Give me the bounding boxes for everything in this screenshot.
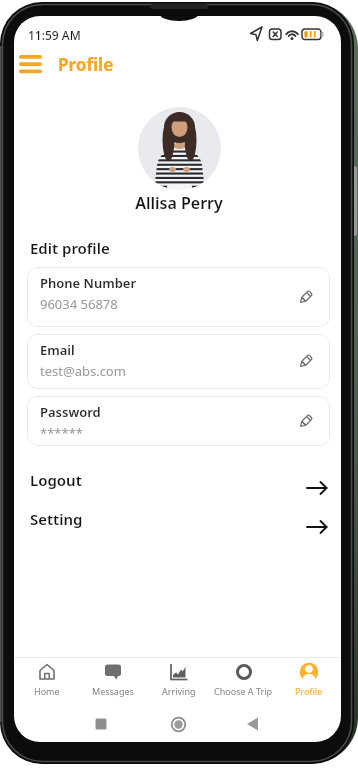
staticText: test@abs.com xyxy=(40,362,126,380)
staticText: 11:59 AM xyxy=(28,27,81,43)
button[interactable]: Profile xyxy=(276,661,341,707)
staticText: Email xyxy=(40,341,75,359)
staticText: Messages xyxy=(92,685,134,697)
button[interactable]: Choose A Trip xyxy=(211,661,276,707)
staticText: Profile xyxy=(295,685,323,697)
button[interactable]: Phone Number xyxy=(27,267,330,327)
staticText: Choose A Trip xyxy=(214,685,273,697)
button[interactable]: Home xyxy=(14,661,80,707)
staticText: Arriving xyxy=(162,685,196,697)
button[interactable]: Password xyxy=(27,396,330,446)
staticText: Setting xyxy=(30,509,83,529)
staticText: Phone Number xyxy=(40,274,137,292)
staticText: Password xyxy=(40,403,101,421)
staticText: Edit profile xyxy=(30,238,110,258)
staticText: Logout xyxy=(30,470,82,490)
staticText: ****** xyxy=(40,424,83,442)
button[interactable]: Logout xyxy=(27,466,330,500)
button[interactable] xyxy=(14,50,66,82)
staticText: Allisa Perry xyxy=(0,192,358,214)
staticText: Home xyxy=(34,685,60,697)
staticText: 96034 56878 xyxy=(40,295,118,313)
button[interactable]: Email xyxy=(27,334,330,389)
button[interactable]: Setting xyxy=(27,505,330,539)
staticText: Profile xyxy=(58,53,114,76)
button[interactable]: Arriving xyxy=(146,661,211,707)
button[interactable]: Messages xyxy=(80,661,146,707)
